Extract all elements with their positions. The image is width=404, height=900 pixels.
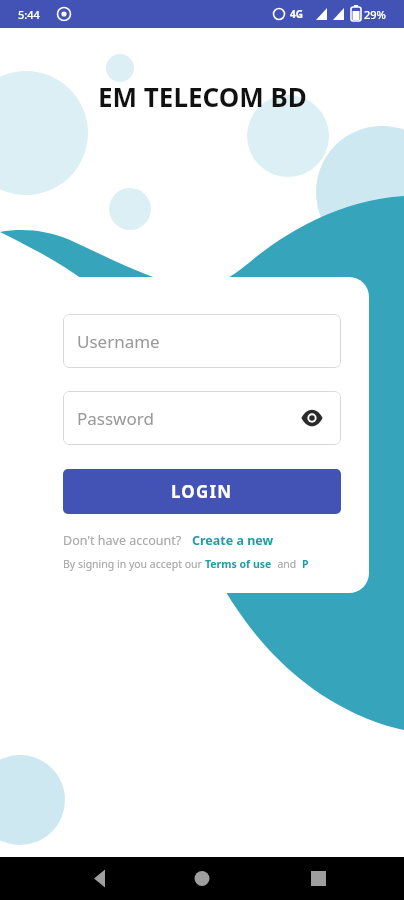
staticText: and: [272, 557, 302, 571]
button[interactable]: Password: [63, 391, 341, 445]
button[interactable]: Show password: [297, 403, 327, 433]
staticText: Username: [77, 330, 160, 353]
staticText: Create a new: [192, 532, 274, 549]
staticText: LOGIN: [171, 480, 233, 503]
button[interactable]: LOGIN: [63, 469, 341, 514]
staticText: P: [302, 557, 309, 571]
staticText: By signing in you accept our: [63, 557, 205, 571]
staticText: 4G: [290, 7, 303, 21]
button[interactable]: P: [302, 557, 309, 571]
button[interactable]: Terms of use: [205, 557, 272, 571]
staticText: Don't have account?: [63, 532, 182, 549]
button[interactable]: Username: [63, 314, 341, 368]
staticText: Password: [77, 407, 154, 430]
staticText: Terms of use: [205, 557, 272, 571]
button[interactable]: Create a new: [192, 532, 274, 549]
staticText: EM TELECOM BD: [98, 79, 307, 114]
staticText: 5:44: [18, 7, 40, 22]
staticText: 29%: [364, 7, 386, 22]
